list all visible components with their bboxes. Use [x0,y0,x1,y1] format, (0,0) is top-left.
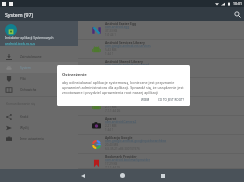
button[interactable]: Wyślij [0,122,78,133]
staticText: com.google.android.googlequicksearchbox [105,139,167,143]
staticText: com.google.android.ext.shared [105,63,150,67]
staticText: com.google.android.ext.services [105,44,151,48]
staticText: com.android.webview [105,82,136,86]
button[interactable]: Ochawicha [0,84,78,95]
staticText: Android Services Library [105,40,145,44]
staticText: 52.21 MB [105,86,119,90]
button[interactable]: CO TO JEST ROOT? [155,96,187,104]
staticText: 20.40 MB [105,143,119,147]
button[interactable]: Aparat [78,116,244,135]
button[interactable]: Search [230,7,244,21]
staticText: Krakii [20,115,29,119]
staticText: Aparat [105,116,117,120]
button[interactable]: Home [116,169,129,182]
staticText: 10:01 [233,1,242,6]
staticText: 1 44 1 [105,52,114,56]
staticText: 5.43 MB [105,48,117,52]
button[interactable]: Android Services Library [78,40,244,59]
button[interactable]: Recents [156,169,169,182]
staticText: Inne ustawienia [20,137,44,141]
staticText: Bookmark Provider [105,154,137,158]
button[interactable]: Krakii [0,111,78,122]
staticText: Android Easter Egg [105,21,137,25]
staticText: 7.1.1 44 25 [105,166,121,170]
button[interactable]: Android System WebView [78,78,244,97]
staticText: CO TO JEST ROOT? [158,98,184,102]
staticText: WIEM [141,98,150,102]
staticText: Instalator aplikacji Systemowych [5,36,54,40]
button[interactable]: Aplikacja Google [78,135,244,154]
button[interactable]: Inne ustawienia [0,133,78,144]
button[interactable]: Android Shared Library [78,59,244,78]
staticText: Wyślij [20,126,29,130]
staticText: Aplikacja Google [105,135,133,139]
staticText: 1 44 1 [105,128,114,132]
button[interactable]: Bookmark Provider [78,154,244,169]
staticText: 1.0 44 1 [105,33,116,37]
staticText: Android System WebView [105,78,147,82]
staticText: aby odinstalować aplikacje systemową, ko… [62,80,184,95]
staticText: System [20,66,31,70]
staticText: com.android.egg [105,25,130,29]
button[interactable]: WIEM [138,96,153,104]
staticText: 37.33 KB [105,29,118,33]
staticText: Zainstalowane [20,55,42,59]
button[interactable]: Pliki [0,73,78,84]
staticText: Ostrzeżenie [62,72,87,78]
button[interactable]: System [0,62,78,73]
staticText: com.android.Camera2 [105,120,137,124]
staticText: Android Shared Library [105,59,143,63]
button[interactable]: Android Easter Egg [78,21,244,40]
staticText: 6.5.35.21.x86 300101976 [105,147,140,151]
staticText: 7.1.1 44 26 [105,109,121,113]
staticText: 17.29 KB [105,162,118,166]
staticText: 52.0.2743.100 44 [105,90,129,94]
button[interactable]: Aplikacja kontaktów [78,97,244,116]
button[interactable]: Back [76,169,89,182]
staticText: System (97) [5,11,34,18]
staticText: Komunikowanie się [6,102,36,106]
staticText: com.android.bookmarkprovider [105,158,150,162]
button[interactable]: Zainstalowane [0,51,78,62]
staticText: 2.11 MB [105,105,117,109]
staticText: Ochawicha [20,88,37,92]
staticText: 2.21 MB [105,124,117,128]
staticText: android-tools.ro.sus [5,42,35,46]
staticText: Pliki [20,77,27,81]
